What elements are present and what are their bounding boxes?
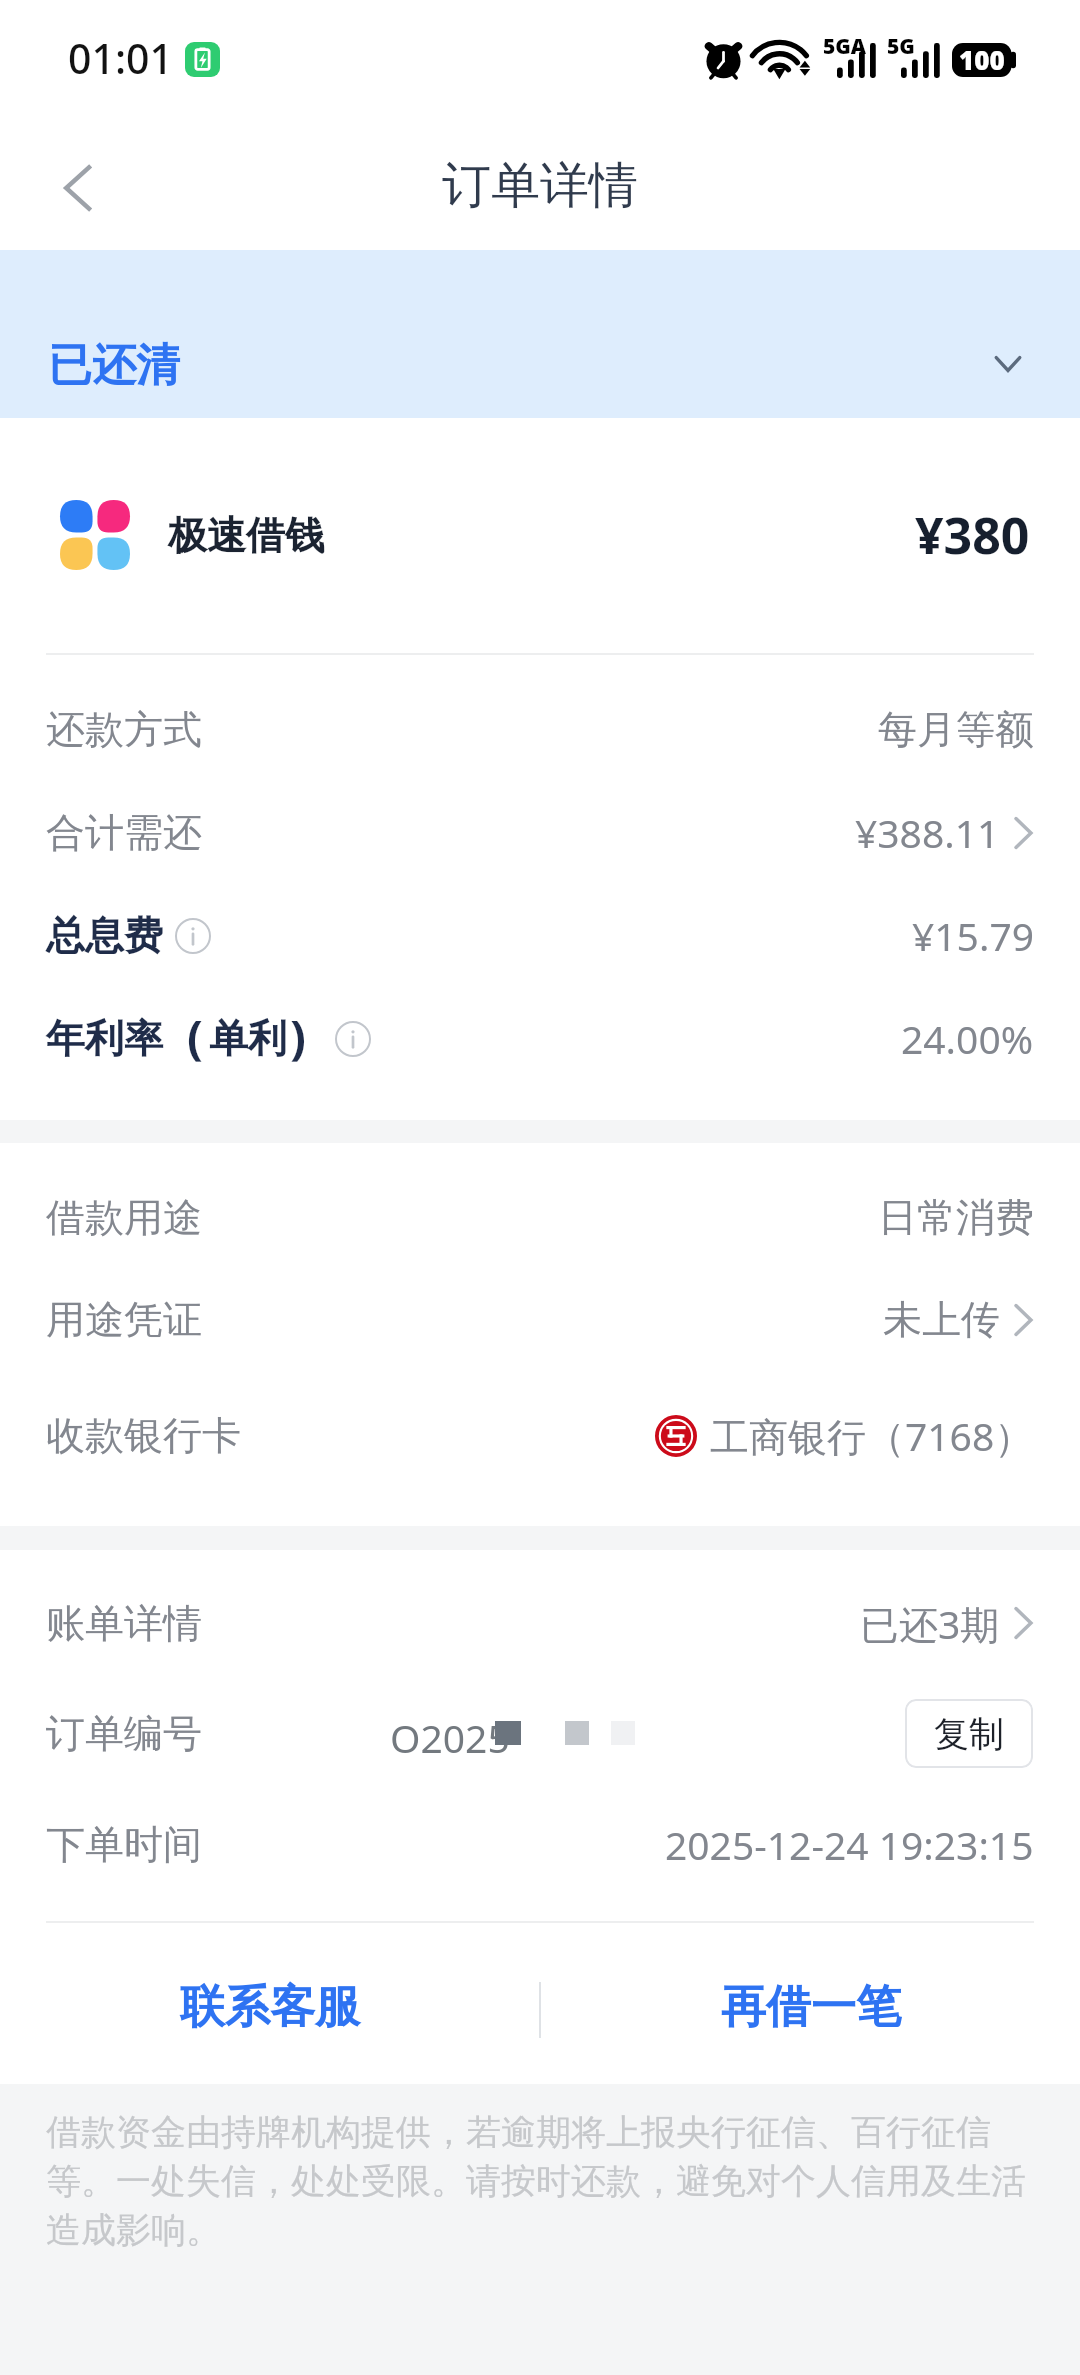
staticText: ( — [187, 1004, 203, 1068]
staticText: 联系客服 — [180, 1979, 360, 2036]
staticText: 还款方式 — [46, 705, 202, 754]
staticText: 极速借钱 — [168, 511, 324, 560]
staticText: 每月等额 — [878, 705, 1034, 754]
staticText: 已还3期 — [860, 1597, 1000, 1650]
button[interactable]: 借款用途 — [0, 1166, 1080, 1268]
staticText: 100 — [959, 42, 1005, 76]
staticText: 复制 — [934, 1712, 1004, 1756]
staticText: 用途凭证 — [46, 1295, 202, 1344]
staticText: 总息费 — [46, 911, 163, 960]
button[interactable]: 合计需还 — [0, 781, 1080, 884]
staticText: 账单详情 — [46, 1599, 202, 1648]
staticText: 01:01 — [68, 30, 173, 86]
staticText: 订单详情 — [442, 155, 638, 217]
staticText: ¥388.11 — [855, 806, 1000, 859]
button[interactable]: Back — [31, 142, 123, 234]
staticText: 日常消费 — [878, 1193, 1034, 1242]
button[interactable]: 还款方式 — [0, 678, 1080, 781]
staticText: 5GA — [823, 32, 867, 61]
staticText: 借款用途 — [46, 1193, 202, 1242]
staticText: 下单时间 — [46, 1820, 202, 1869]
staticText: 5G — [887, 32, 915, 61]
staticText: 已还清 — [48, 338, 180, 393]
button[interactable]: 用途凭证 — [0, 1268, 1080, 1371]
button[interactable]: 下单时间 — [0, 1793, 1080, 1895]
staticText: 工商银行（7168） — [710, 1409, 1034, 1462]
button[interactable]: 复制 — [905, 1699, 1033, 1768]
button[interactable]: 已还清 — [0, 250, 1080, 418]
staticText: 单利 — [209, 1014, 287, 1063]
staticText: ¥380 — [915, 501, 1030, 569]
staticText: 再借一笔 — [721, 1979, 901, 2036]
button[interactable]: 总息费 — [0, 884, 1080, 987]
button[interactable]: 再借一笔 — [541, 1923, 1080, 2084]
staticText: 借款资金由持牌机构提供，若逾期将上报央行征信、百行征信等。一处失信，处处受限。请… — [46, 2110, 1058, 2252]
staticText: ¥15.79 — [912, 909, 1034, 962]
staticText: 收款银行卡 — [46, 1411, 241, 1460]
staticText: 24.00% — [901, 1012, 1034, 1065]
button[interactable]: 收款银行卡 — [0, 1371, 1080, 1500]
button[interactable]: 账单详情 — [0, 1573, 1080, 1673]
staticText: 未上传 — [883, 1295, 1000, 1344]
button[interactable]: 年利率 — [0, 987, 1080, 1090]
staticText: 年利率 — [46, 1014, 163, 1063]
staticText: 订单编号 — [46, 1709, 202, 1758]
staticText: 合计需还 — [46, 808, 202, 857]
staticText: ) — [290, 1004, 306, 1068]
staticText: O2025 — [390, 1711, 510, 1755]
staticText: 2025-12-24 19:23:15 — [665, 1818, 1034, 1871]
button[interactable]: 联系客服 — [0, 1923, 539, 2084]
